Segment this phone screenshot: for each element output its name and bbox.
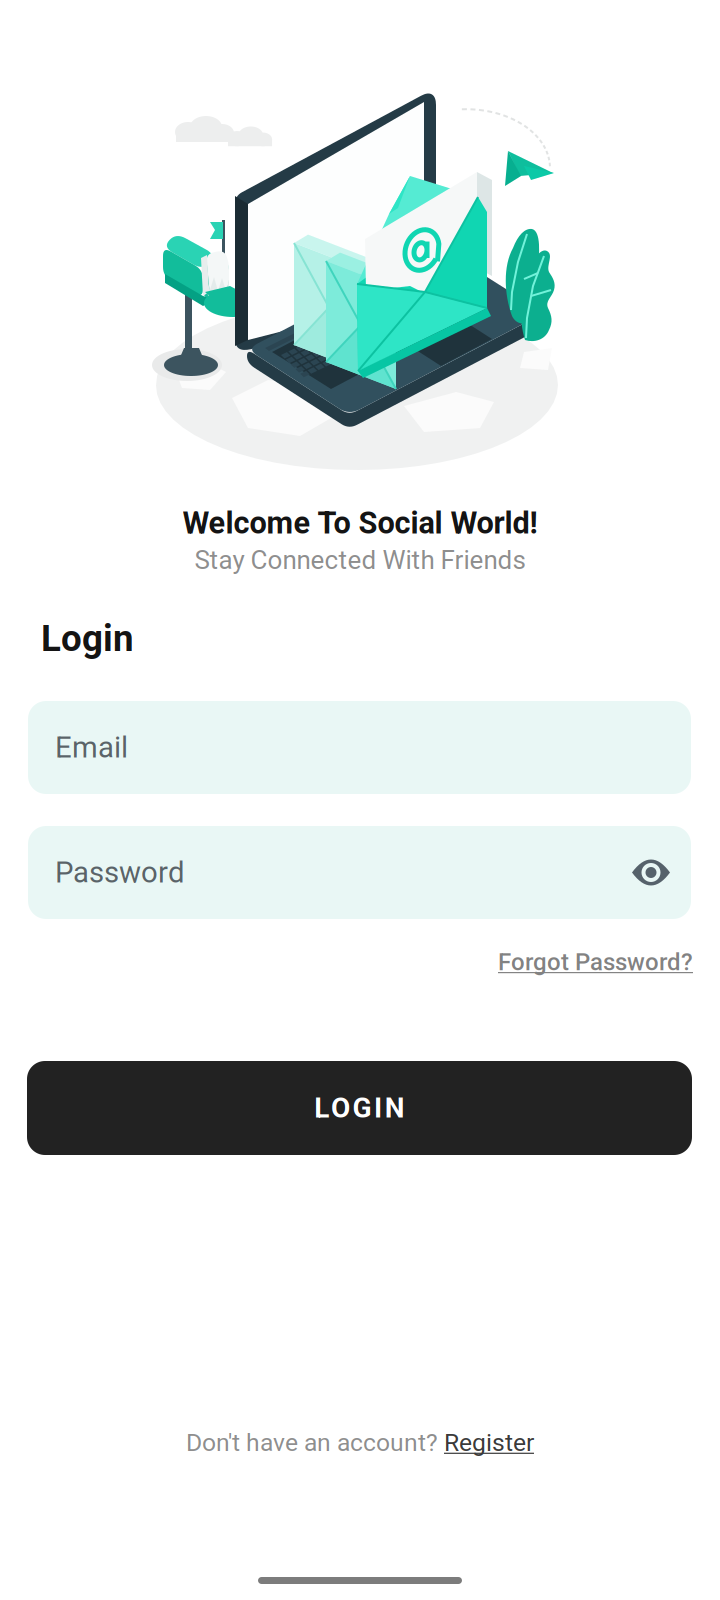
staticText: Password <box>55 855 185 890</box>
button[interactable]: Register <box>444 1428 534 1457</box>
staticText: Stay Connected With Friends <box>194 545 525 575</box>
staticText: Email <box>55 730 128 765</box>
button[interactable]: Forgot Password? <box>498 948 693 976</box>
staticText: Forgot Password? <box>498 948 693 976</box>
staticText: LOGIN <box>314 1092 405 1124</box>
button[interactable]: Show password <box>625 826 677 919</box>
staticText: Register <box>444 1428 534 1457</box>
staticText: Welcome To Social World! <box>182 505 537 541</box>
staticText: Login <box>41 617 134 660</box>
staticText: Don't have an account? <box>186 1428 444 1457</box>
button[interactable]: LOGIN <box>27 1061 692 1155</box>
